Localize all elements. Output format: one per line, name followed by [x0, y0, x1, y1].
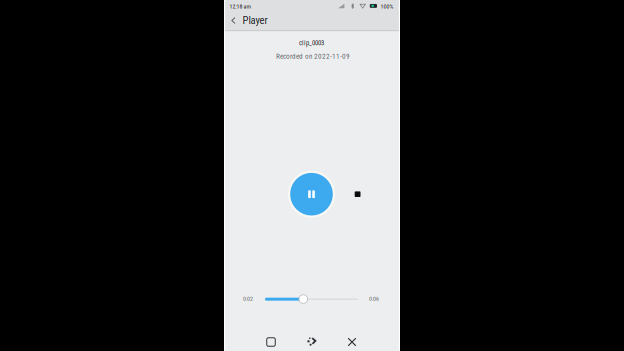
- staticText: Player: [242, 14, 267, 27]
- button[interactable]: Pause: [288, 171, 335, 218]
- staticText: 12:18 am: [230, 3, 252, 10]
- staticText: 100%: [380, 3, 393, 10]
- button[interactable]: Home: [299, 329, 324, 351]
- button[interactable]: Back: [340, 330, 364, 351]
- staticText: Recorded on 2022-11-09: [276, 52, 350, 60]
- staticText: clip_0003: [299, 39, 324, 47]
- button[interactable]: Stop: [348, 184, 367, 204]
- staticText: 0:02: [243, 295, 253, 302]
- staticText: 0:06: [369, 295, 379, 302]
- button[interactable]: Back: [226, 12, 240, 29]
- button[interactable]: Recents: [259, 330, 283, 351]
